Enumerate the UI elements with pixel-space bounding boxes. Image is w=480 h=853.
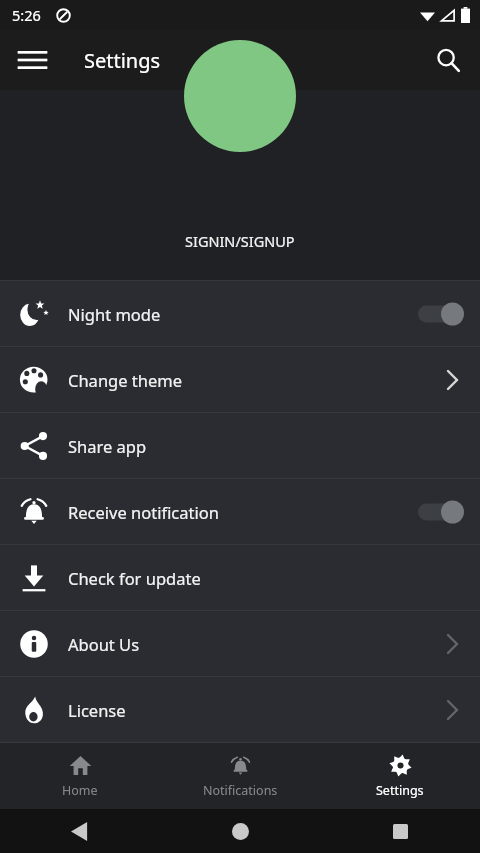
button[interactable]: Home [0, 743, 160, 809]
button[interactable]: Night mode [0, 281, 480, 346]
staticText: Receive notification [68, 501, 418, 523]
staticText: Home [62, 782, 98, 799]
staticText: License [68, 699, 447, 721]
button[interactable]: Toggle setting [418, 301, 464, 327]
button[interactable]: Toggle setting [418, 499, 464, 525]
button[interactable]: Open navigation menu [9, 37, 55, 83]
button[interactable]: License [0, 677, 480, 742]
button[interactable]: Search [425, 37, 471, 83]
button[interactable]: About Us [0, 611, 480, 676]
staticText: 5:26 [12, 5, 41, 25]
button[interactable]: Notifications [160, 743, 320, 809]
button[interactable]: Change theme [0, 347, 480, 412]
staticText: Settings [84, 47, 161, 74]
button[interactable]: Settings [320, 743, 480, 809]
button[interactable]: Share app [0, 413, 480, 478]
button[interactable]: Receive notification [0, 479, 480, 544]
button[interactable]: Back [0, 809, 160, 853]
staticText: Notifications [203, 782, 278, 799]
button[interactable]: SIGNIN/SIGNUP [185, 231, 295, 251]
staticText: Night mode [68, 303, 418, 325]
button[interactable]: Check for update [0, 545, 480, 610]
staticText: Settings [376, 782, 424, 799]
button[interactable]: Home [160, 809, 320, 853]
staticText: Change theme [68, 369, 447, 391]
staticText: About Us [68, 633, 447, 655]
staticText: Share app [68, 435, 460, 457]
button[interactable]: Recent apps [320, 809, 480, 853]
staticText: Check for update [68, 567, 460, 589]
